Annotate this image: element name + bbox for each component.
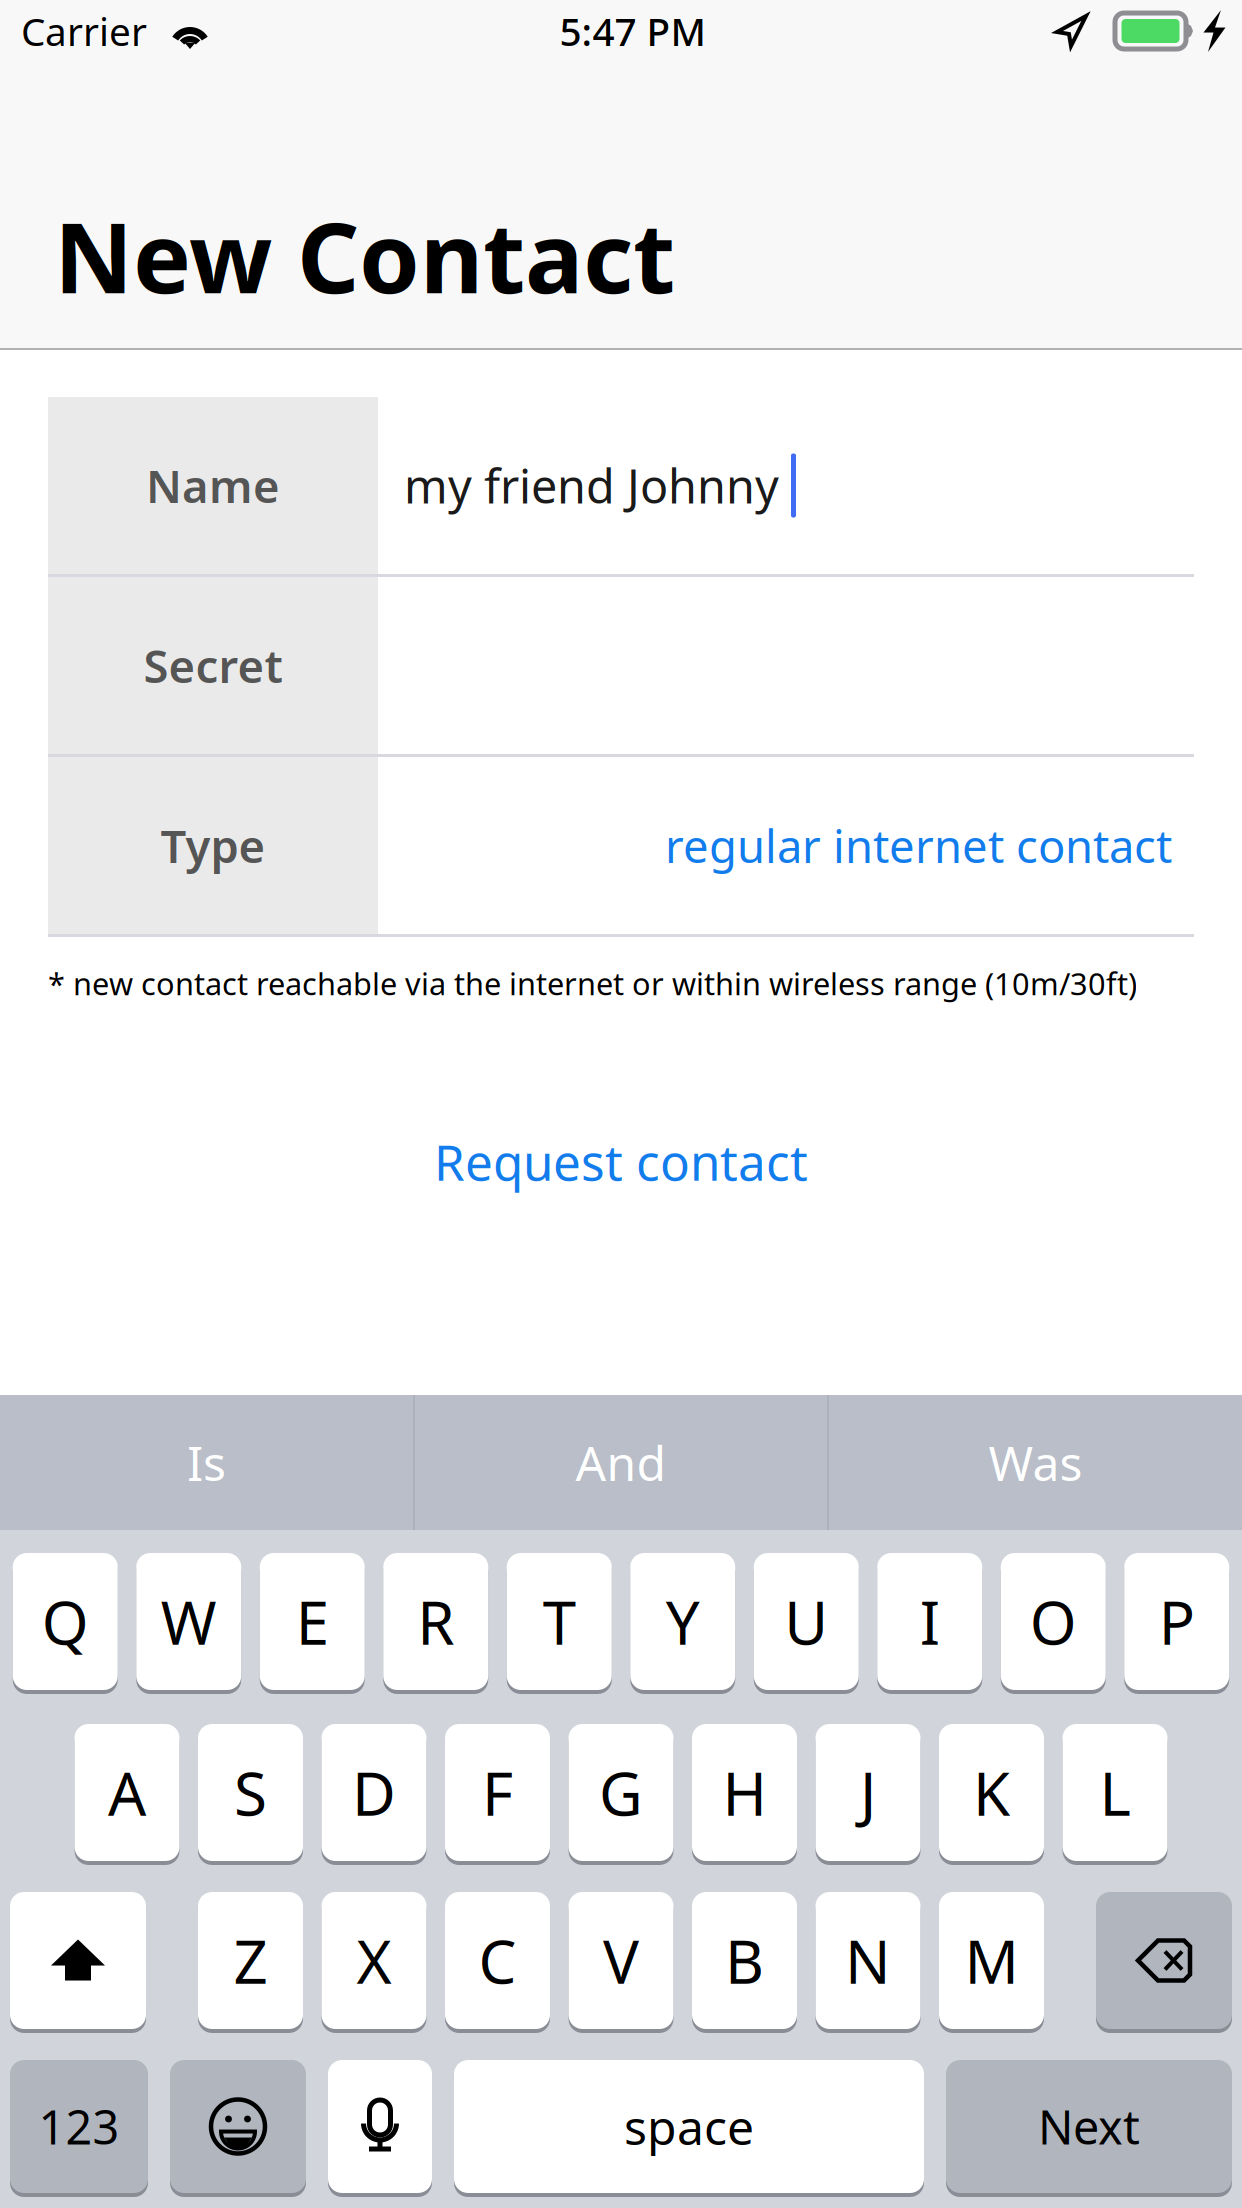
staticText: * new contact reachable via the internet… bbox=[48, 963, 1137, 1004]
staticText: J bbox=[860, 1753, 876, 1832]
button[interactable]: And bbox=[415, 1395, 827, 1530]
staticText: U bbox=[784, 1582, 828, 1661]
staticText: F bbox=[482, 1753, 513, 1832]
staticText: Was bbox=[988, 1431, 1082, 1494]
button[interactable]: T bbox=[507, 1553, 612, 1690]
staticText: H bbox=[722, 1753, 766, 1832]
button[interactable]: Y bbox=[630, 1553, 735, 1690]
staticText: Carrier bbox=[21, 5, 147, 57]
staticText: 123 bbox=[38, 2095, 119, 2157]
staticText: L bbox=[1099, 1753, 1130, 1832]
button[interactable]: space bbox=[454, 2060, 924, 2193]
staticText: R bbox=[417, 1582, 454, 1661]
staticText: T bbox=[543, 1582, 576, 1661]
button[interactable]: J bbox=[815, 1724, 920, 1861]
staticText: Q bbox=[42, 1582, 89, 1661]
staticText: S bbox=[234, 1753, 267, 1832]
button[interactable]: K bbox=[939, 1724, 1044, 1861]
staticText: I bbox=[920, 1582, 940, 1661]
button[interactable]: Type bbox=[48, 757, 1194, 934]
staticText: 5:47 PM bbox=[559, 5, 705, 57]
button[interactable]: O bbox=[1001, 1553, 1106, 1690]
staticText: V bbox=[603, 1921, 639, 2000]
staticText: G bbox=[599, 1753, 643, 1832]
staticText: O bbox=[1030, 1582, 1077, 1661]
button[interactable]: N bbox=[815, 1892, 920, 2029]
staticText: Name bbox=[146, 455, 280, 516]
staticText: D bbox=[352, 1753, 396, 1832]
button[interactable]: E bbox=[260, 1553, 365, 1690]
button[interactable]: C bbox=[445, 1892, 550, 2029]
button[interactable]: Was bbox=[829, 1395, 1242, 1530]
staticText: And bbox=[575, 1431, 666, 1494]
staticText: New Contact bbox=[54, 191, 675, 320]
button[interactable]: P bbox=[1124, 1553, 1229, 1690]
staticText: X bbox=[356, 1921, 391, 2000]
button[interactable]: U bbox=[754, 1553, 859, 1690]
button[interactable]: M bbox=[939, 1892, 1044, 2029]
staticText: Secret bbox=[143, 635, 282, 696]
staticText: Z bbox=[233, 1921, 267, 2000]
staticText: C bbox=[478, 1921, 516, 2000]
staticText: space bbox=[624, 2095, 754, 2158]
button[interactable]: L bbox=[1062, 1724, 1167, 1861]
button[interactable]: R bbox=[383, 1553, 488, 1690]
button[interactable]: Emoji bbox=[170, 2060, 306, 2193]
staticText: Y bbox=[666, 1582, 700, 1661]
staticText: K bbox=[973, 1753, 1010, 1832]
button[interactable]: X bbox=[321, 1892, 426, 2029]
staticText: Request contact bbox=[434, 1129, 808, 1194]
staticText: M bbox=[964, 1921, 1018, 2000]
button[interactable]: G bbox=[568, 1724, 673, 1861]
button[interactable]: A bbox=[74, 1724, 179, 1861]
button[interactable]: Name bbox=[48, 397, 1194, 574]
staticText: N bbox=[845, 1921, 891, 2000]
button[interactable]: Shift bbox=[10, 1892, 146, 2029]
button[interactable]: V bbox=[568, 1892, 673, 2029]
staticText: Is bbox=[187, 1431, 226, 1494]
staticText: regular internet contact bbox=[665, 815, 1172, 876]
button[interactable]: F bbox=[445, 1724, 550, 1861]
button[interactable]: Is bbox=[0, 1395, 413, 1530]
button[interactable]: S bbox=[198, 1724, 303, 1861]
button[interactable]: Request contact bbox=[0, 1126, 1242, 1198]
staticText: my friend Johnny bbox=[404, 454, 779, 516]
button[interactable]: W bbox=[136, 1553, 241, 1690]
button[interactable]: Next bbox=[946, 2060, 1232, 2193]
button[interactable]: B bbox=[692, 1892, 797, 2029]
button[interactable]: D bbox=[321, 1724, 426, 1861]
button[interactable]: Z bbox=[198, 1892, 303, 2029]
button[interactable]: Secret bbox=[48, 577, 1194, 754]
staticText: Type bbox=[160, 815, 265, 876]
button[interactable]: I bbox=[877, 1553, 982, 1690]
button[interactable]: Dictation bbox=[328, 2060, 432, 2193]
staticText: E bbox=[296, 1582, 329, 1661]
staticText: Next bbox=[1038, 2095, 1140, 2157]
staticText: W bbox=[161, 1582, 217, 1661]
button[interactable]: 123 bbox=[10, 2060, 148, 2193]
button[interactable]: H bbox=[692, 1724, 797, 1861]
staticText: P bbox=[1159, 1582, 1195, 1661]
staticText: A bbox=[108, 1753, 146, 1832]
staticText: B bbox=[725, 1921, 764, 2000]
button[interactable]: Q bbox=[13, 1553, 118, 1690]
button[interactable]: Delete bbox=[1096, 1892, 1232, 2029]
